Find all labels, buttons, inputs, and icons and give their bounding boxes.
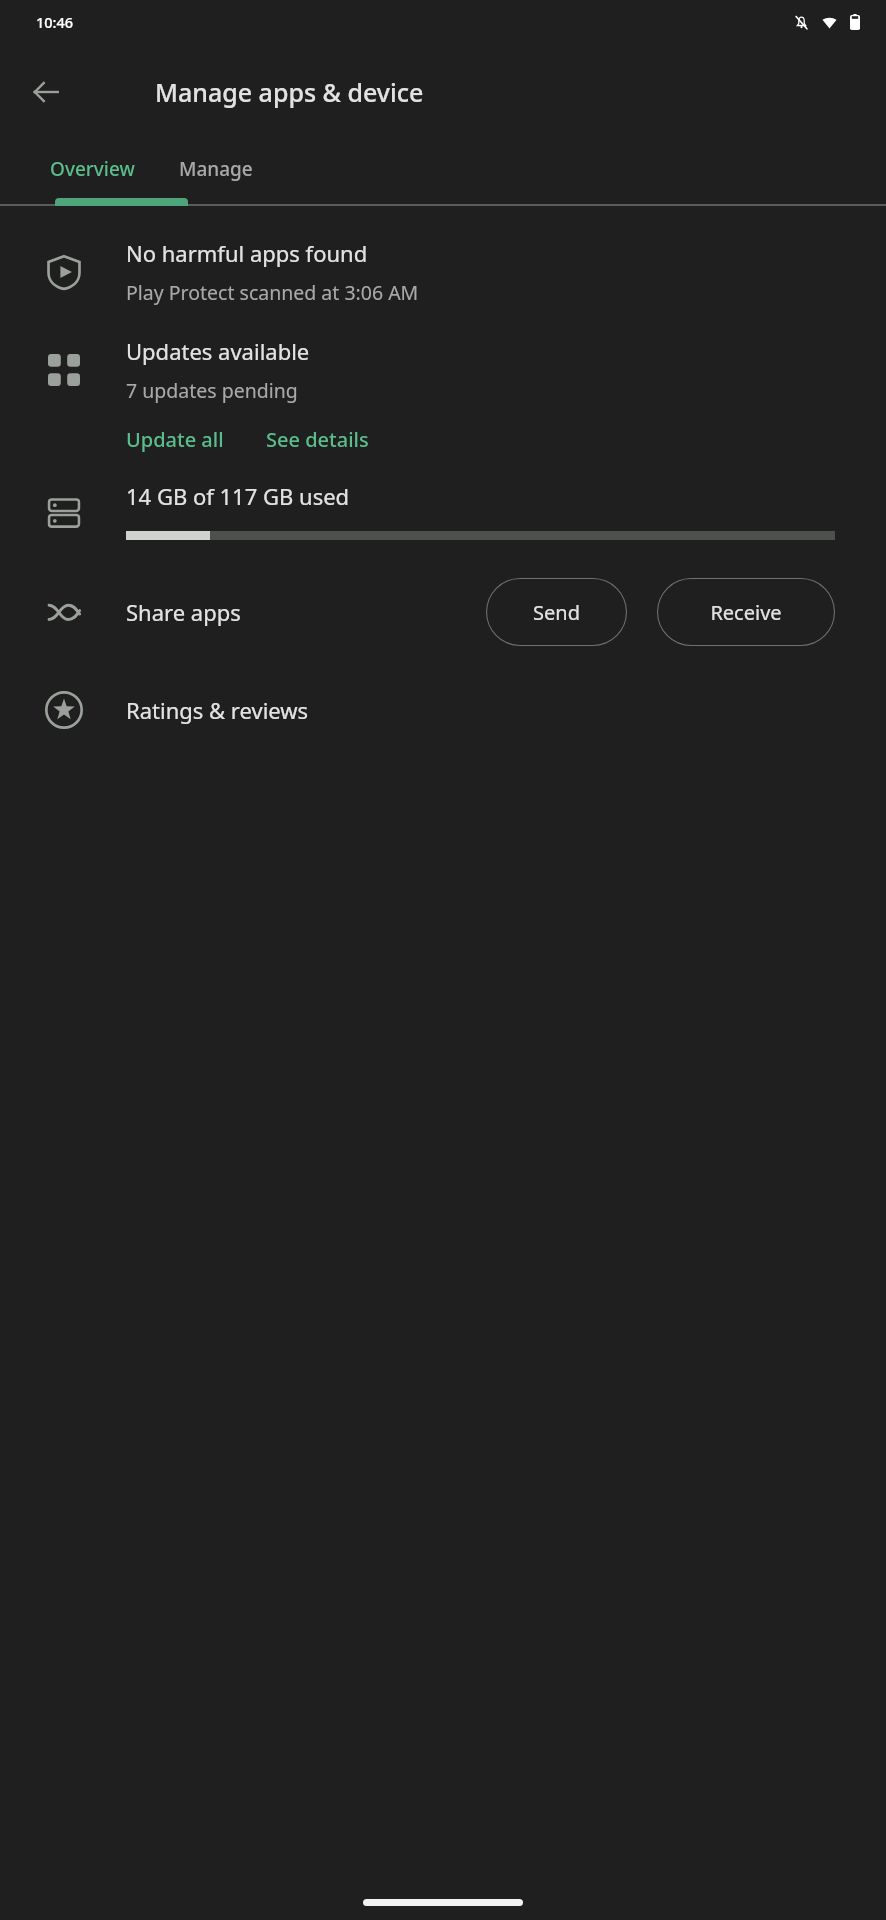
staticText: Update all [126, 426, 224, 453]
button[interactable]: 14 GB of 117 GB used [0, 471, 886, 550]
button[interactable]: Send [486, 578, 627, 646]
staticText: No harmful apps found [126, 238, 368, 268]
button[interactable]: Receive [657, 578, 835, 646]
staticText: Overview [50, 156, 135, 182]
staticText: Manage apps & device [155, 75, 424, 109]
button[interactable]: Manage [157, 140, 275, 198]
staticText: Receive [710, 599, 782, 626]
staticText: Send [533, 599, 580, 626]
staticText: 10:46 [36, 12, 74, 32]
button[interactable]: Update all [126, 426, 224, 453]
staticText: 7 updates pending [126, 377, 298, 404]
button[interactable]: Updates available [126, 336, 310, 366]
button[interactable]: No harmful apps found [0, 228, 886, 316]
button[interactable]: Overview [28, 140, 157, 198]
button[interactable]: See details [266, 426, 369, 453]
button[interactable]: Ratings & reviews [0, 670, 886, 750]
button[interactable]: Share apps [126, 597, 241, 627]
button[interactable]: Back [18, 64, 74, 120]
staticText: See details [266, 426, 369, 453]
staticText: Play Protect scanned at 3:06 AM [126, 279, 419, 306]
staticText: Ratings & reviews [126, 695, 309, 725]
staticText: Manage [179, 156, 253, 182]
staticText: 14 GB of 117 GB used [126, 481, 350, 511]
